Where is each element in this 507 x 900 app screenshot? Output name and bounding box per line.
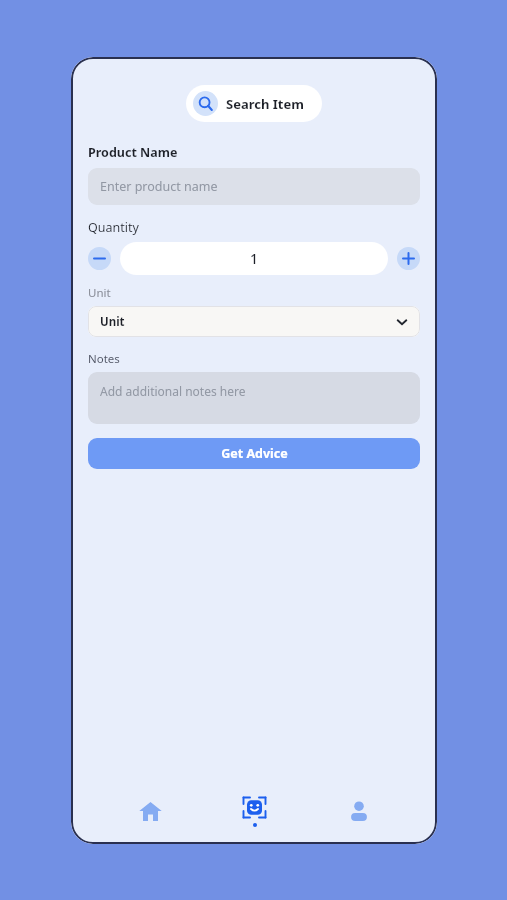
button[interactable]: Assistant xyxy=(228,785,280,837)
staticText: Search Item xyxy=(226,95,304,113)
button[interactable]: Home xyxy=(124,785,176,837)
button[interactable]: Search Item xyxy=(186,85,322,122)
staticText: Add additional notes here xyxy=(100,383,246,399)
button[interactable]: Get Advice xyxy=(88,438,420,469)
button[interactable]: Increase quantity xyxy=(397,247,420,270)
staticText: Enter product name xyxy=(100,178,218,195)
staticText: Unit xyxy=(100,314,125,330)
staticText: Unit xyxy=(88,285,111,301)
button[interactable]: 1 xyxy=(120,242,388,275)
button[interactable]: Unit xyxy=(88,306,420,337)
staticText: 1 xyxy=(250,249,259,268)
staticText: Product Name xyxy=(88,144,178,161)
button[interactable]: Profile xyxy=(333,785,385,837)
staticText: Get Advice xyxy=(221,445,288,462)
button[interactable]: Enter product name xyxy=(88,168,420,205)
button[interactable]: Decrease quantity xyxy=(88,247,111,270)
staticText: Notes xyxy=(88,351,120,367)
staticText: Quantity xyxy=(88,219,139,236)
button[interactable]: Add additional notes here xyxy=(88,372,420,424)
